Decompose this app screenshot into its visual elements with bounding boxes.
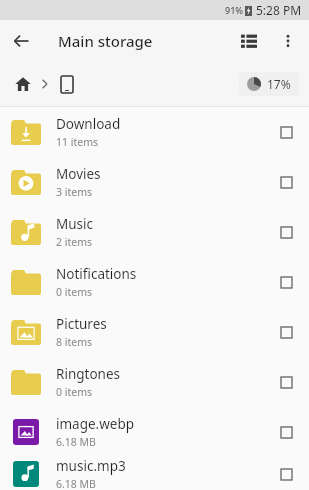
staticText: 11 items	[56, 135, 99, 149]
staticText: 0 items	[56, 285, 93, 299]
button[interactable]: View mode	[229, 21, 269, 61]
button[interactable]: Select Movies	[271, 167, 301, 197]
staticText: 6.18 MB	[56, 477, 96, 490]
staticText: Notifications	[56, 265, 137, 283]
staticText: 91%	[225, 4, 243, 16]
button[interactable]: Pictures	[0, 307, 309, 357]
button[interactable]: Select music.mp3	[271, 459, 301, 489]
button[interactable]: Back	[0, 20, 42, 62]
staticText: 6.18 MB	[56, 435, 96, 449]
staticText: Music	[56, 215, 94, 233]
staticText: 8 items	[56, 335, 93, 349]
button[interactable]: Device storage	[55, 72, 79, 96]
staticText: Main storage	[58, 31, 153, 51]
button[interactable]: Select Download	[271, 117, 301, 147]
button[interactable]: Movies	[0, 157, 309, 207]
button[interactable]: Ringtones	[0, 357, 309, 407]
staticText: Movies	[56, 165, 101, 183]
staticText: 17%	[267, 76, 291, 92]
button[interactable]: 17%	[239, 72, 299, 96]
staticText: Download	[56, 115, 121, 133]
staticText: Ringtones	[56, 365, 120, 383]
button[interactable]: Select Pictures	[271, 317, 301, 347]
button[interactable]: Select image.webp	[271, 417, 301, 447]
staticText: 2 items	[56, 235, 93, 249]
button[interactable]: music.mp3	[0, 457, 309, 490]
button[interactable]: Notifications	[0, 257, 309, 307]
button[interactable]: Download	[0, 107, 309, 157]
button[interactable]: More options	[269, 22, 307, 60]
staticText: 5:28 PM	[256, 2, 302, 18]
button[interactable]: image.webp	[0, 407, 309, 457]
button[interactable]: Select Music	[271, 217, 301, 247]
button[interactable]: Select Ringtones	[271, 367, 301, 397]
staticText: image.webp	[56, 415, 135, 433]
staticText: 3 items	[56, 185, 93, 199]
button[interactable]: Music	[0, 207, 309, 257]
staticText: Pictures	[56, 315, 107, 333]
button[interactable]: Select Notifications	[271, 267, 301, 297]
staticText: music.mp3	[56, 457, 126, 475]
staticText: 0 items	[56, 385, 93, 399]
button[interactable]: Home	[10, 71, 36, 97]
